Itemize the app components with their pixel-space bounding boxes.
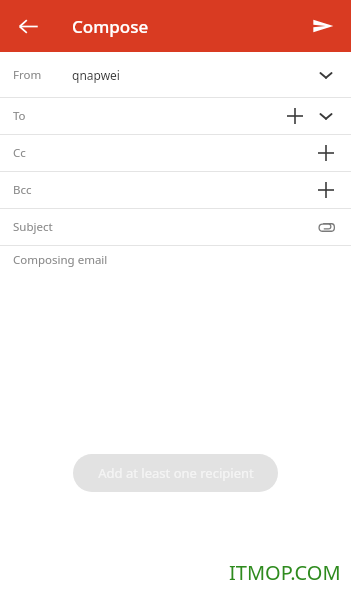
staticText: Add at least one recipient xyxy=(98,464,254,482)
button[interactable]: Choose sender xyxy=(309,58,343,92)
button[interactable]: Add recipient xyxy=(278,99,312,133)
staticText: Composing email xyxy=(13,252,108,268)
button[interactable]: Add Bcc recipient xyxy=(309,173,343,207)
staticText: Cc xyxy=(13,145,26,161)
button[interactable]: Back xyxy=(8,6,48,46)
button[interactable]: Composing email xyxy=(0,246,351,274)
button[interactable]: Send xyxy=(303,6,343,46)
staticText: ITMOP.COM xyxy=(229,559,341,586)
staticText: From xyxy=(13,67,42,83)
staticText: To xyxy=(13,108,26,124)
button[interactable]: Add at least one recipient xyxy=(73,454,278,492)
button[interactable]: Expand recipients xyxy=(309,99,343,133)
staticText: Subject xyxy=(13,219,53,235)
staticText: Compose xyxy=(72,15,149,38)
staticText: qnapwei xyxy=(72,67,120,83)
button[interactable]: Attach file xyxy=(309,210,343,244)
staticText: Bcc xyxy=(13,182,32,198)
button[interactable]: Add Cc recipient xyxy=(309,136,343,170)
